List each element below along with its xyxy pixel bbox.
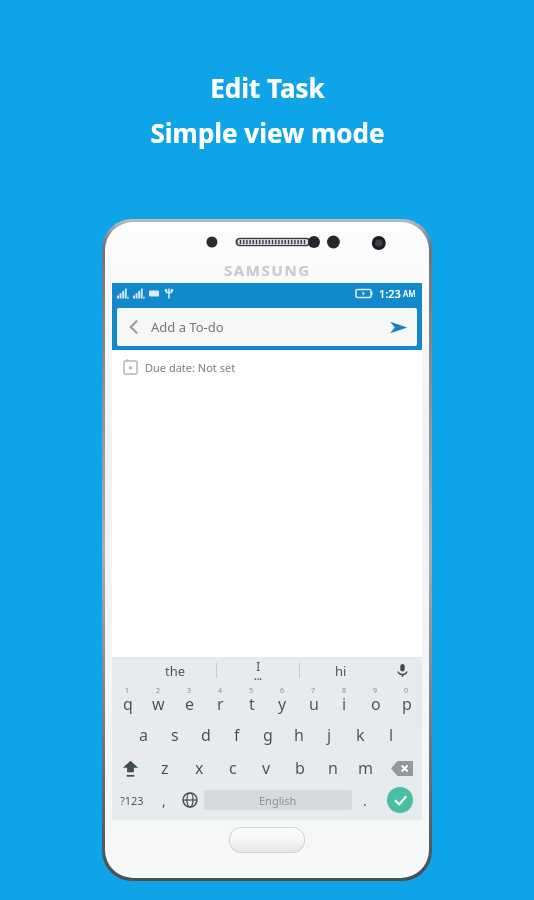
staticText: l xyxy=(389,724,394,746)
button[interactable]: c xyxy=(216,752,250,784)
staticText: x xyxy=(195,757,204,779)
button[interactable]: Send xyxy=(379,308,417,346)
button[interactable]: Shift xyxy=(112,752,148,784)
staticText: h xyxy=(294,724,304,746)
button[interactable]: Done xyxy=(378,784,422,816)
staticText: 9 xyxy=(373,686,378,696)
staticText: c xyxy=(229,757,237,779)
staticText: English xyxy=(259,793,297,808)
staticText: 6 xyxy=(280,686,285,696)
staticText: 1:23 xyxy=(379,286,401,301)
button[interactable]: v xyxy=(250,752,283,784)
staticText: 1 xyxy=(125,686,130,696)
button[interactable]: 4 xyxy=(205,684,236,718)
staticText: . xyxy=(363,791,367,810)
staticText: , xyxy=(162,791,166,810)
staticText: 7 xyxy=(311,686,316,696)
button[interactable]: Home xyxy=(229,827,305,853)
button[interactable]: Back xyxy=(117,310,151,344)
button[interactable]: Backspace xyxy=(382,752,422,784)
button[interactable]: Back xyxy=(117,308,417,346)
button[interactable]: x xyxy=(182,752,216,784)
staticText: 4 xyxy=(218,686,223,696)
staticText: q xyxy=(123,693,133,715)
button[interactable]: f xyxy=(221,718,252,752)
staticText: v xyxy=(262,757,271,779)
button[interactable]: m xyxy=(349,752,382,784)
button[interactable]: z xyxy=(148,752,182,784)
staticText: s xyxy=(171,724,179,746)
staticText: g xyxy=(263,724,273,746)
staticText: i xyxy=(342,693,347,715)
staticText: o xyxy=(371,693,381,715)
staticText: Edit Task xyxy=(210,70,325,105)
button[interactable]: English xyxy=(204,790,352,810)
staticText: Due date: Not set xyxy=(145,360,236,375)
staticText: z xyxy=(161,757,169,779)
button[interactable]: n xyxy=(316,752,349,784)
button[interactable]: , xyxy=(152,784,176,816)
button[interactable]: 9 xyxy=(360,684,391,718)
staticText: e xyxy=(185,693,195,715)
button[interactable]: Change language xyxy=(176,784,204,816)
button[interactable]: hi xyxy=(300,657,382,684)
staticText: u xyxy=(309,693,319,715)
button[interactable]: 6 xyxy=(267,684,298,718)
button[interactable]: 7 xyxy=(298,684,329,718)
button[interactable]: 0 xyxy=(391,684,422,718)
button[interactable]: 8 xyxy=(329,684,360,718)
staticText: r xyxy=(217,693,224,715)
staticText: n xyxy=(328,757,338,779)
staticText: Add a To-do xyxy=(151,318,224,336)
button[interactable]: s xyxy=(159,718,190,752)
button[interactable]: l xyxy=(376,718,407,752)
staticText: AM xyxy=(403,288,416,299)
staticText: y xyxy=(278,693,287,715)
staticText: ••• xyxy=(254,675,262,684)
staticText: m xyxy=(358,757,373,779)
staticText: 8 xyxy=(342,686,347,696)
button[interactable]: 1 xyxy=(112,684,143,718)
button[interactable]: h xyxy=(283,718,314,752)
button[interactable]: b xyxy=(283,752,316,784)
button[interactable]: 5 xyxy=(236,684,267,718)
staticText: 3 xyxy=(187,686,192,696)
staticText: p xyxy=(402,693,412,715)
button[interactable]: Due date: Not set xyxy=(112,350,422,384)
staticText: SAMSUNG xyxy=(224,260,311,280)
staticText: a xyxy=(139,724,148,746)
staticText: the xyxy=(165,662,186,680)
staticText: d xyxy=(201,724,211,746)
button[interactable]: . xyxy=(352,784,378,816)
staticText: f xyxy=(234,724,240,746)
button[interactable]: ?123 xyxy=(112,784,152,816)
button[interactable]: j xyxy=(314,718,345,752)
staticText: j xyxy=(327,724,332,746)
button[interactable]: 3 xyxy=(174,684,205,718)
staticText: 0 xyxy=(404,686,409,696)
button[interactable]: 2 xyxy=(143,684,174,718)
staticText: hi xyxy=(335,662,347,680)
button[interactable]: g xyxy=(252,718,283,752)
staticText: t xyxy=(249,693,255,715)
staticText: w xyxy=(152,693,165,715)
staticText: ?123 xyxy=(120,793,144,808)
staticText: I xyxy=(256,657,261,675)
staticText: b xyxy=(295,757,305,779)
staticText: Simple view mode xyxy=(150,115,385,150)
button[interactable]: Voice input xyxy=(382,657,422,684)
button[interactable]: the xyxy=(134,657,216,684)
staticText: 5 xyxy=(249,686,254,696)
staticText: k xyxy=(356,724,365,746)
button[interactable]: k xyxy=(345,718,376,752)
button[interactable]: a xyxy=(127,718,159,752)
button[interactable]: d xyxy=(190,718,221,752)
staticText: 2 xyxy=(156,686,161,696)
